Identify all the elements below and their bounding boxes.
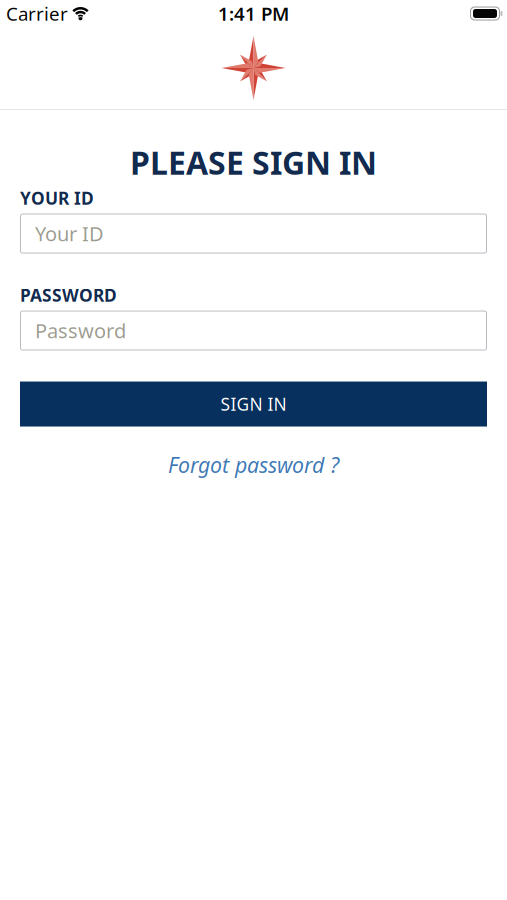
staticText: 1:41 PM — [218, 1, 289, 26]
button[interactable]: Forgot password ? — [160, 446, 347, 483]
staticText: SIGN IN — [220, 392, 286, 415]
staticText: Carrier — [6, 1, 68, 26]
button[interactable]: SIGN IN — [20, 381, 487, 426]
staticText: PASSWORD — [20, 283, 117, 306]
staticText: Password — [35, 317, 126, 344]
staticText: PLEASE SIGN IN — [130, 141, 377, 183]
staticText: Forgot password ? — [168, 450, 339, 479]
textField[interactable]: Your ID — [35, 220, 475, 247]
staticText: YOUR ID — [20, 186, 94, 209]
staticText: Your ID — [35, 220, 104, 247]
secureTextField[interactable]: Password — [35, 317, 475, 344]
